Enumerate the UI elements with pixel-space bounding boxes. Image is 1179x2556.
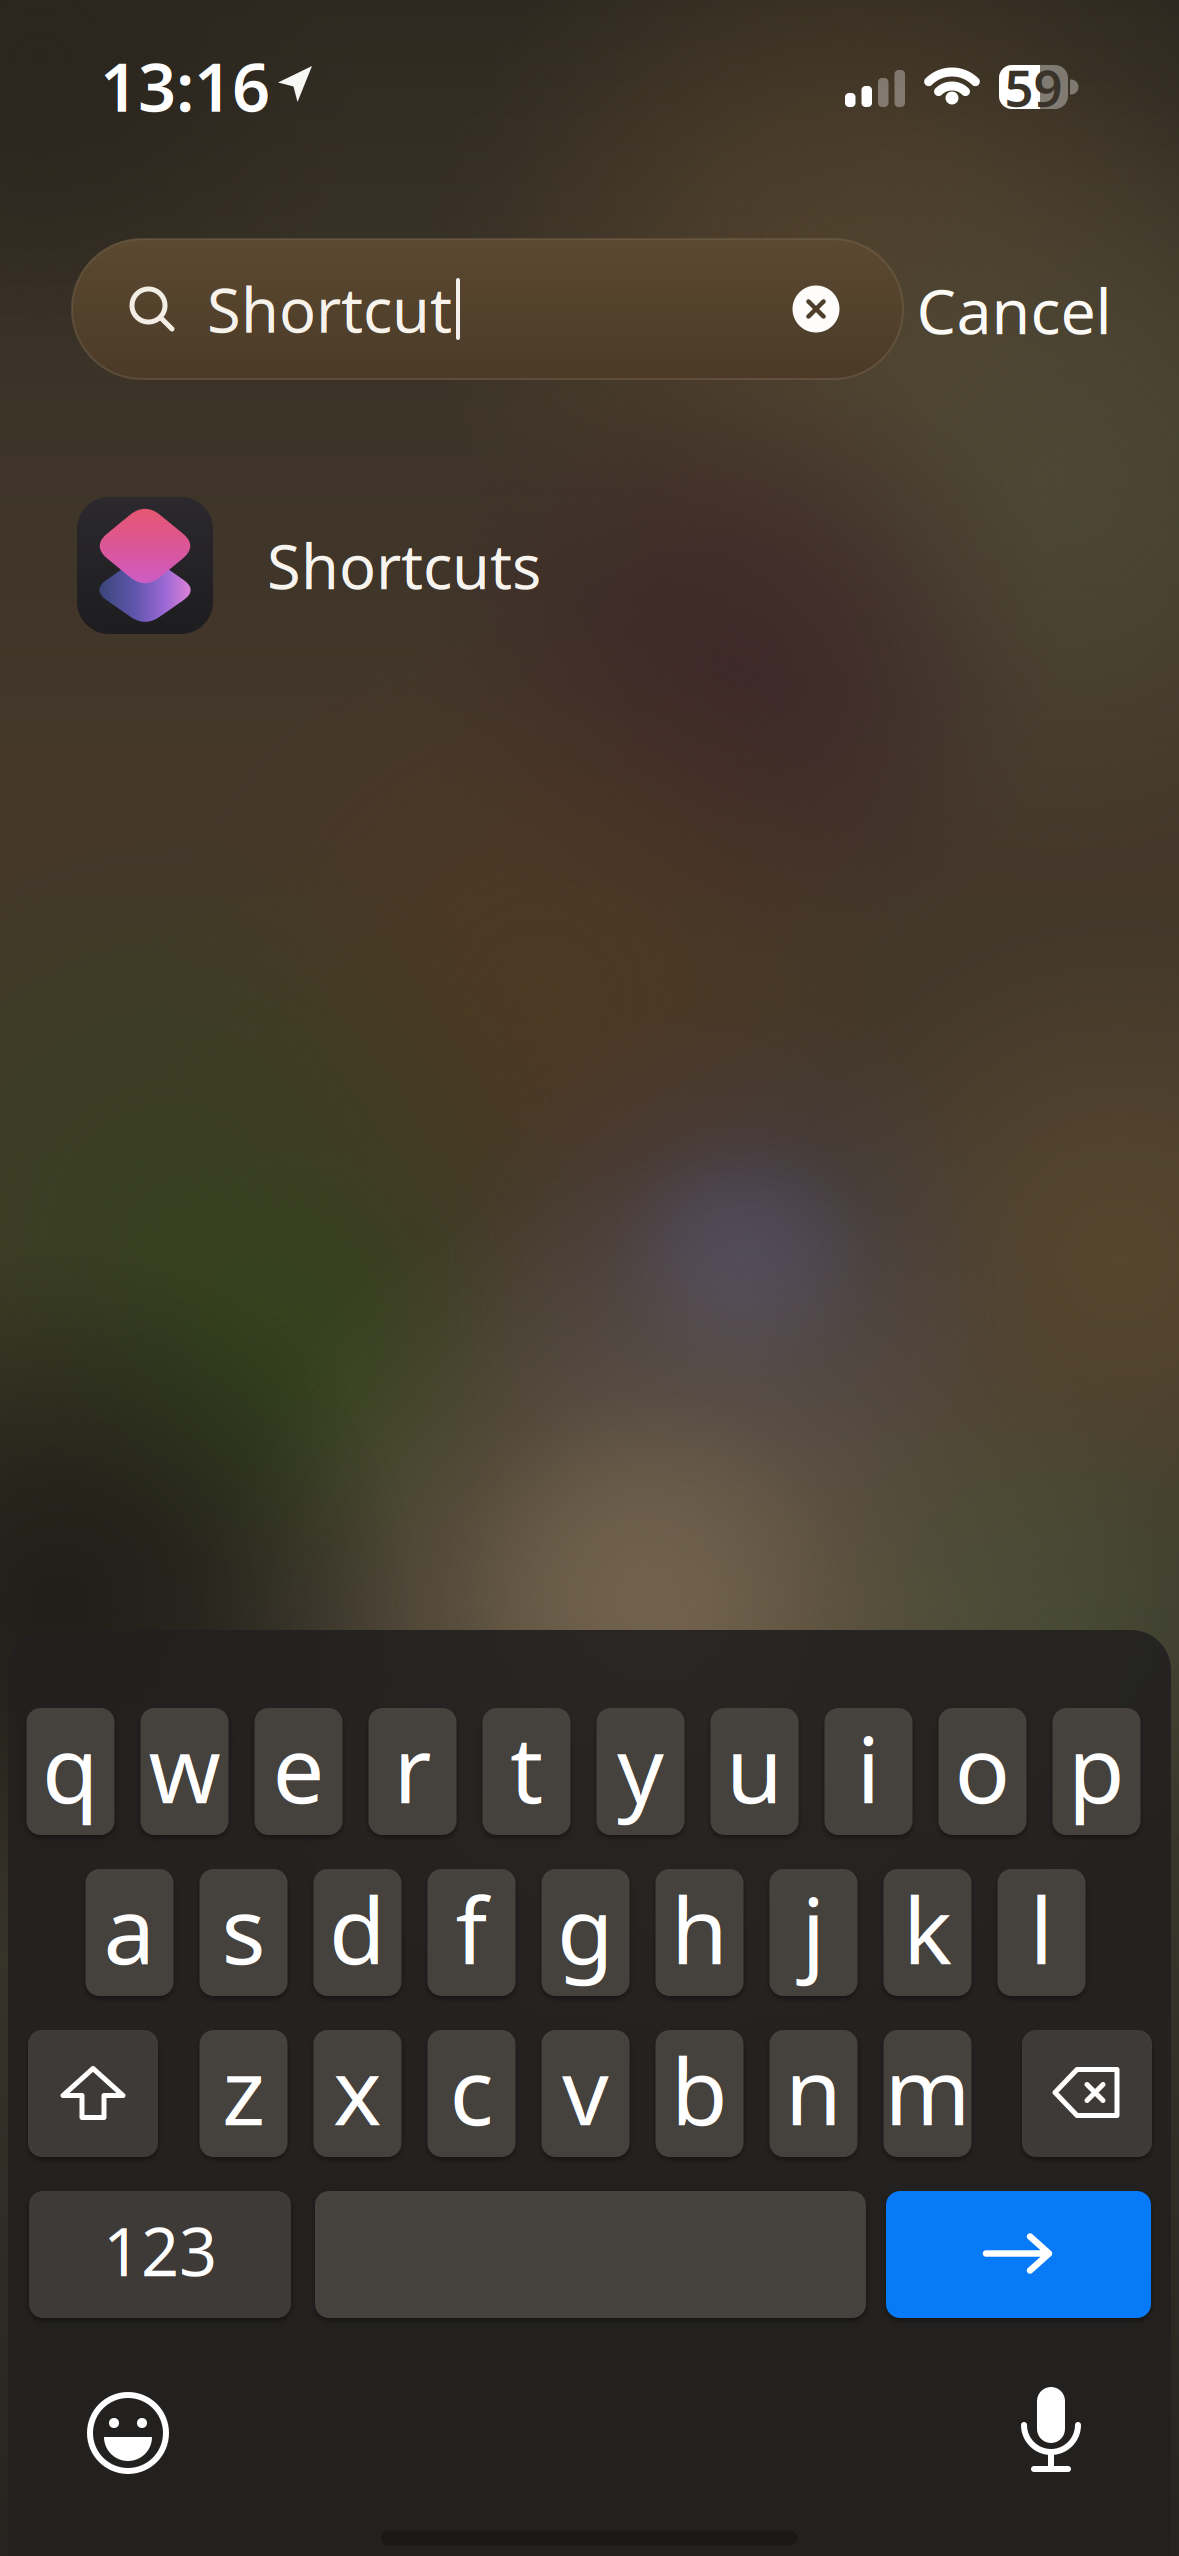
staticText: j xyxy=(801,1867,825,1990)
button[interactable]: h xyxy=(655,1869,743,1996)
button[interactable]: q xyxy=(26,1708,114,1835)
button[interactable]: a xyxy=(85,1869,173,1996)
button[interactable]: n xyxy=(769,2030,857,2157)
staticText: v xyxy=(562,2028,609,2151)
staticText: w xyxy=(148,1706,220,1829)
button[interactable]: z xyxy=(199,2030,287,2157)
button[interactable]: t xyxy=(482,1708,570,1835)
staticText: d xyxy=(329,1867,386,1990)
button[interactable]: Shortcut xyxy=(72,239,903,379)
staticText: q xyxy=(42,1706,99,1829)
button[interactable]: o xyxy=(938,1708,1026,1835)
staticText: m xyxy=(884,2028,970,2151)
staticText: p xyxy=(1068,1706,1125,1829)
button[interactable]: 123 xyxy=(29,2191,291,2318)
staticText: e xyxy=(272,1706,324,1829)
staticText xyxy=(578,2189,602,2312)
staticText: c xyxy=(449,2028,493,2151)
button[interactable]: u xyxy=(710,1708,798,1835)
staticText: g xyxy=(557,1867,614,1990)
staticText: Shortcut xyxy=(207,268,452,350)
button[interactable]: Dictation xyxy=(1016,2380,1086,2480)
button[interactable]: k xyxy=(883,1869,971,1996)
button[interactable]: b xyxy=(655,2030,743,2157)
staticText: y xyxy=(617,1706,664,1829)
button[interactable]: Return xyxy=(886,2191,1151,2318)
staticText: a xyxy=(103,1867,155,1990)
staticText: i xyxy=(856,1706,880,1829)
staticText: s xyxy=(221,1867,265,1990)
button[interactable]: i xyxy=(824,1708,912,1835)
button[interactable]: y xyxy=(596,1708,684,1835)
button[interactable]: Clear text xyxy=(792,285,840,333)
staticText: t xyxy=(510,1706,543,1829)
staticText: n xyxy=(785,2028,842,2151)
staticText: r xyxy=(393,1706,431,1829)
staticText: h xyxy=(671,1867,728,1990)
button[interactable]: l xyxy=(997,1869,1085,1996)
button[interactable]: f xyxy=(427,1869,515,1996)
staticText: Cancel xyxy=(916,268,1111,352)
button[interactable]: Shift xyxy=(28,2030,158,2157)
button[interactable]: v xyxy=(541,2030,629,2157)
staticText: x xyxy=(333,2028,382,2151)
staticText: u xyxy=(726,1706,783,1829)
staticText: Shortcuts xyxy=(267,525,541,606)
button[interactable]: w xyxy=(140,1708,228,1835)
button[interactable]: d xyxy=(313,1869,401,1996)
button[interactable]: x xyxy=(313,2030,401,2157)
button[interactable]: e xyxy=(254,1708,342,1835)
staticText: f xyxy=(455,1867,487,1990)
staticText: 59 xyxy=(1004,53,1062,121)
button[interactable]: c xyxy=(427,2030,515,2157)
staticText: 13:16 xyxy=(100,42,270,130)
button[interactable]: Emoji xyxy=(83,2388,173,2478)
staticText: o xyxy=(954,1706,1010,1829)
button[interactable]: Cancel xyxy=(916,268,1111,352)
staticText: b xyxy=(671,2028,728,2151)
button[interactable]: r xyxy=(368,1708,456,1835)
button[interactable]: m xyxy=(883,2030,971,2157)
button[interactable]: Shortcuts xyxy=(77,495,1179,635)
staticText: k xyxy=(903,1867,952,1990)
button[interactable]: j xyxy=(769,1869,857,1996)
button[interactable]: s xyxy=(199,1869,287,1996)
button[interactable]: p xyxy=(1052,1708,1140,1835)
button[interactable]: g xyxy=(541,1869,629,1996)
button[interactable]: Delete xyxy=(1022,2030,1152,2157)
staticText: z xyxy=(222,2028,265,2151)
staticText: l xyxy=(1029,1867,1053,1990)
staticText: 123 xyxy=(103,2206,217,2295)
